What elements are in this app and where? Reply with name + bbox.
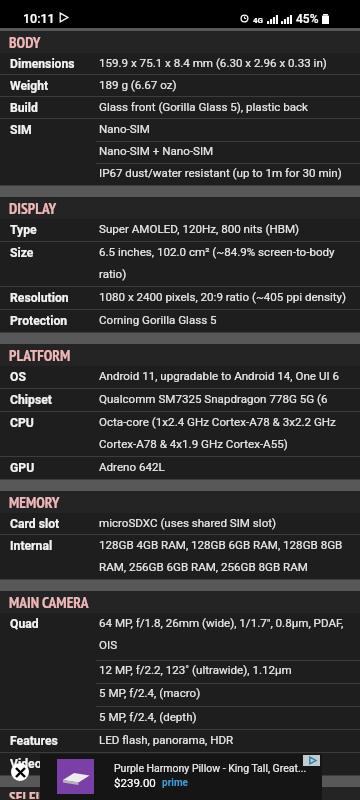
button[interactable]: OS bbox=[0, 366, 360, 389]
staticText: Purple Harmony Pillow - King Tall, Great… bbox=[114, 762, 307, 774]
staticText: Type bbox=[10, 223, 37, 237]
button[interactable]: Resolution bbox=[0, 287, 360, 310]
staticText: 4G bbox=[253, 16, 264, 25]
staticText: Adreno 642L bbox=[99, 460, 165, 474]
staticText: DISPLAY bbox=[9, 198, 57, 218]
staticText: 5 MP, f/2.4, (macro) bbox=[99, 686, 201, 700]
button[interactable]: Purple Harmony Pillow - King Tall, Great… bbox=[40, 754, 322, 800]
button[interactable]: Internal bbox=[0, 535, 360, 580]
other: Play bbox=[58, 12, 69, 23]
staticText: MEMORY bbox=[9, 492, 60, 512]
staticText: 1080 x 2400 pixels, 20:9 ratio (~405 ppi… bbox=[99, 290, 347, 304]
staticText: OS bbox=[10, 370, 26, 384]
button[interactable]: Protection bbox=[0, 310, 360, 333]
button[interactable]: CPU bbox=[0, 412, 360, 457]
staticText: Internal bbox=[10, 539, 53, 553]
staticText: Chipset bbox=[10, 393, 52, 407]
button[interactable]: Features bbox=[0, 730, 360, 753]
staticText: 10:11 bbox=[23, 11, 55, 26]
button[interactable]: SELFIE CAMERA bbox=[0, 787, 360, 800]
staticText: 159.9 x 75.1 x 8.4 mm (6.30 x 2.96 x 0.3… bbox=[99, 56, 327, 70]
button[interactable]: Chipset bbox=[0, 389, 360, 412]
staticText: 64 MP, f/1.8, 26mm (wide), 1/1.7", 0.8µm… bbox=[99, 616, 347, 652]
button[interactable]: Type bbox=[0, 219, 360, 242]
staticText: 128GB 4GB RAM, 128GB 6GB RAM, 128GB 8GB … bbox=[99, 538, 347, 574]
staticText: 6.5 inches, 102.0 cm² (~84.9% screen-to-… bbox=[99, 245, 347, 281]
button[interactable]: PLATFORM bbox=[0, 344, 360, 366]
button[interactable]: BODY bbox=[0, 31, 360, 53]
staticText: Android 11, upgradable to Android 14, On… bbox=[99, 369, 339, 383]
staticText: Glass front (Gorilla Glass 5), plastic b… bbox=[99, 100, 308, 114]
staticText: 189 g (6.67 oz) bbox=[99, 78, 177, 92]
staticText: Corning Gorilla Glass 5 bbox=[99, 313, 217, 327]
staticText: Resolution bbox=[10, 291, 69, 305]
staticText: PLATFORM bbox=[9, 345, 71, 365]
staticText: Super AMOLED, 120Hz, 800 nits (HBM) bbox=[99, 222, 300, 236]
staticText: SELFIE CAMERA bbox=[9, 787, 96, 799]
staticText: prime bbox=[162, 777, 188, 789]
button[interactable]: GPU bbox=[0, 457, 360, 480]
button[interactable]: SIM bbox=[0, 119, 360, 186]
button[interactable]: Card slot bbox=[0, 513, 360, 535]
staticText: GPU bbox=[10, 461, 35, 475]
button[interactable]: Dimensions bbox=[0, 53, 360, 75]
staticText: BODY bbox=[9, 32, 41, 52]
staticText: CPU bbox=[10, 416, 34, 430]
staticText: Protection bbox=[10, 314, 68, 328]
button[interactable]: AdChoices bbox=[303, 755, 320, 766]
button[interactable]: MEMORY bbox=[0, 491, 360, 513]
button[interactable]: MAIN CAMERA bbox=[0, 591, 360, 613]
staticText: Nano-SIM + Nano-SIM bbox=[99, 144, 214, 158]
staticText: microSDXC (uses shared SIM slot) bbox=[99, 516, 277, 530]
staticText: Video bbox=[10, 757, 42, 771]
staticText: Octa-core (1x2.4 GHz Cortex-A78 & 3x2.2 … bbox=[99, 415, 347, 451]
staticText: 5 MP, f/2.4, (depth) bbox=[99, 710, 197, 724]
staticText: 4K@30fps, 1080p@30/60/240fps, gyro-EIS bbox=[99, 756, 321, 770]
staticText: Build bbox=[10, 101, 38, 115]
button[interactable]: Video bbox=[0, 753, 360, 776]
staticText: LED flash, panorama, HDR bbox=[99, 733, 234, 747]
staticText: $239.00 bbox=[114, 776, 156, 789]
staticText: Size bbox=[10, 246, 34, 260]
button[interactable]: Weight bbox=[0, 75, 360, 97]
staticText: Nano-SIM bbox=[99, 122, 150, 136]
staticText: Features bbox=[10, 734, 58, 748]
button[interactable]: Quad bbox=[0, 613, 360, 730]
button[interactable]: Size bbox=[0, 242, 360, 287]
staticText: SIM bbox=[10, 123, 32, 137]
button[interactable]: Close ad bbox=[11, 763, 29, 781]
staticText: Weight bbox=[10, 79, 49, 93]
staticText: MAIN CAMERA bbox=[9, 592, 89, 612]
staticText: IP67 dust/water resistant (up to 1m for … bbox=[99, 166, 342, 180]
staticText: 45% bbox=[296, 12, 319, 26]
button[interactable]: DISPLAY bbox=[0, 197, 360, 219]
staticText: 12 MP, f/2.2, 123˚ (ultrawide), 1.12µm bbox=[99, 663, 292, 677]
staticText: Dimensions bbox=[10, 57, 75, 71]
button[interactable]: Build bbox=[0, 97, 360, 119]
staticText: Quad bbox=[10, 617, 39, 631]
staticText: Qualcomm SM7325 Snapdragon 778G 5G (6 nm… bbox=[99, 392, 347, 406]
staticText: Card slot bbox=[10, 517, 60, 531]
